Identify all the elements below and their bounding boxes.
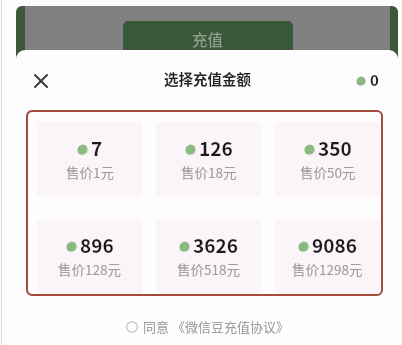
staticText: 同意 《微信豆充值协议》 [143, 317, 289, 336]
staticText: 售价1元 [66, 162, 114, 182]
staticText: 选择充值金额 [164, 68, 251, 89]
staticText: 售价1298元 [292, 259, 363, 279]
button[interactable]: 7 [37, 122, 142, 197]
staticText: 充值 [192, 28, 224, 50]
staticText: 0 [370, 69, 379, 91]
staticText: 9086 [312, 231, 357, 259]
button[interactable]: 896 [37, 219, 142, 294]
staticText: 126 [199, 134, 233, 162]
button[interactable]: 0 [356, 69, 379, 91]
staticText: 350 [318, 134, 352, 162]
staticText: 7 [91, 134, 103, 162]
button[interactable]: 充值 [123, 21, 293, 56]
button[interactable]: 126 [156, 122, 261, 197]
staticText: 售价518元 [177, 259, 240, 279]
button[interactable]: 9086 [275, 219, 380, 294]
staticText: 售价128元 [58, 259, 121, 279]
staticText: 售价18元 [181, 162, 237, 182]
staticText: 896 [80, 231, 114, 259]
button[interactable]: 同意 《微信豆充值协议》 [126, 317, 289, 336]
button[interactable]: 350 [275, 122, 380, 197]
button[interactable]: 关闭 [27, 67, 55, 95]
staticText: 3626 [193, 231, 238, 259]
button[interactable]: 3626 [156, 219, 261, 294]
staticText: 售价50元 [300, 162, 356, 182]
